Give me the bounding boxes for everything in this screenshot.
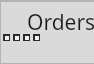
button[interactable]: Shortcut 2: [13, 34, 20, 41]
button[interactable]: Shortcut 4: [33, 34, 40, 41]
button[interactable]: Shortcut 1: [3, 34, 10, 41]
staticText: Orders: [27, 8, 94, 37]
button[interactable]: Shortcut 3: [23, 34, 30, 41]
